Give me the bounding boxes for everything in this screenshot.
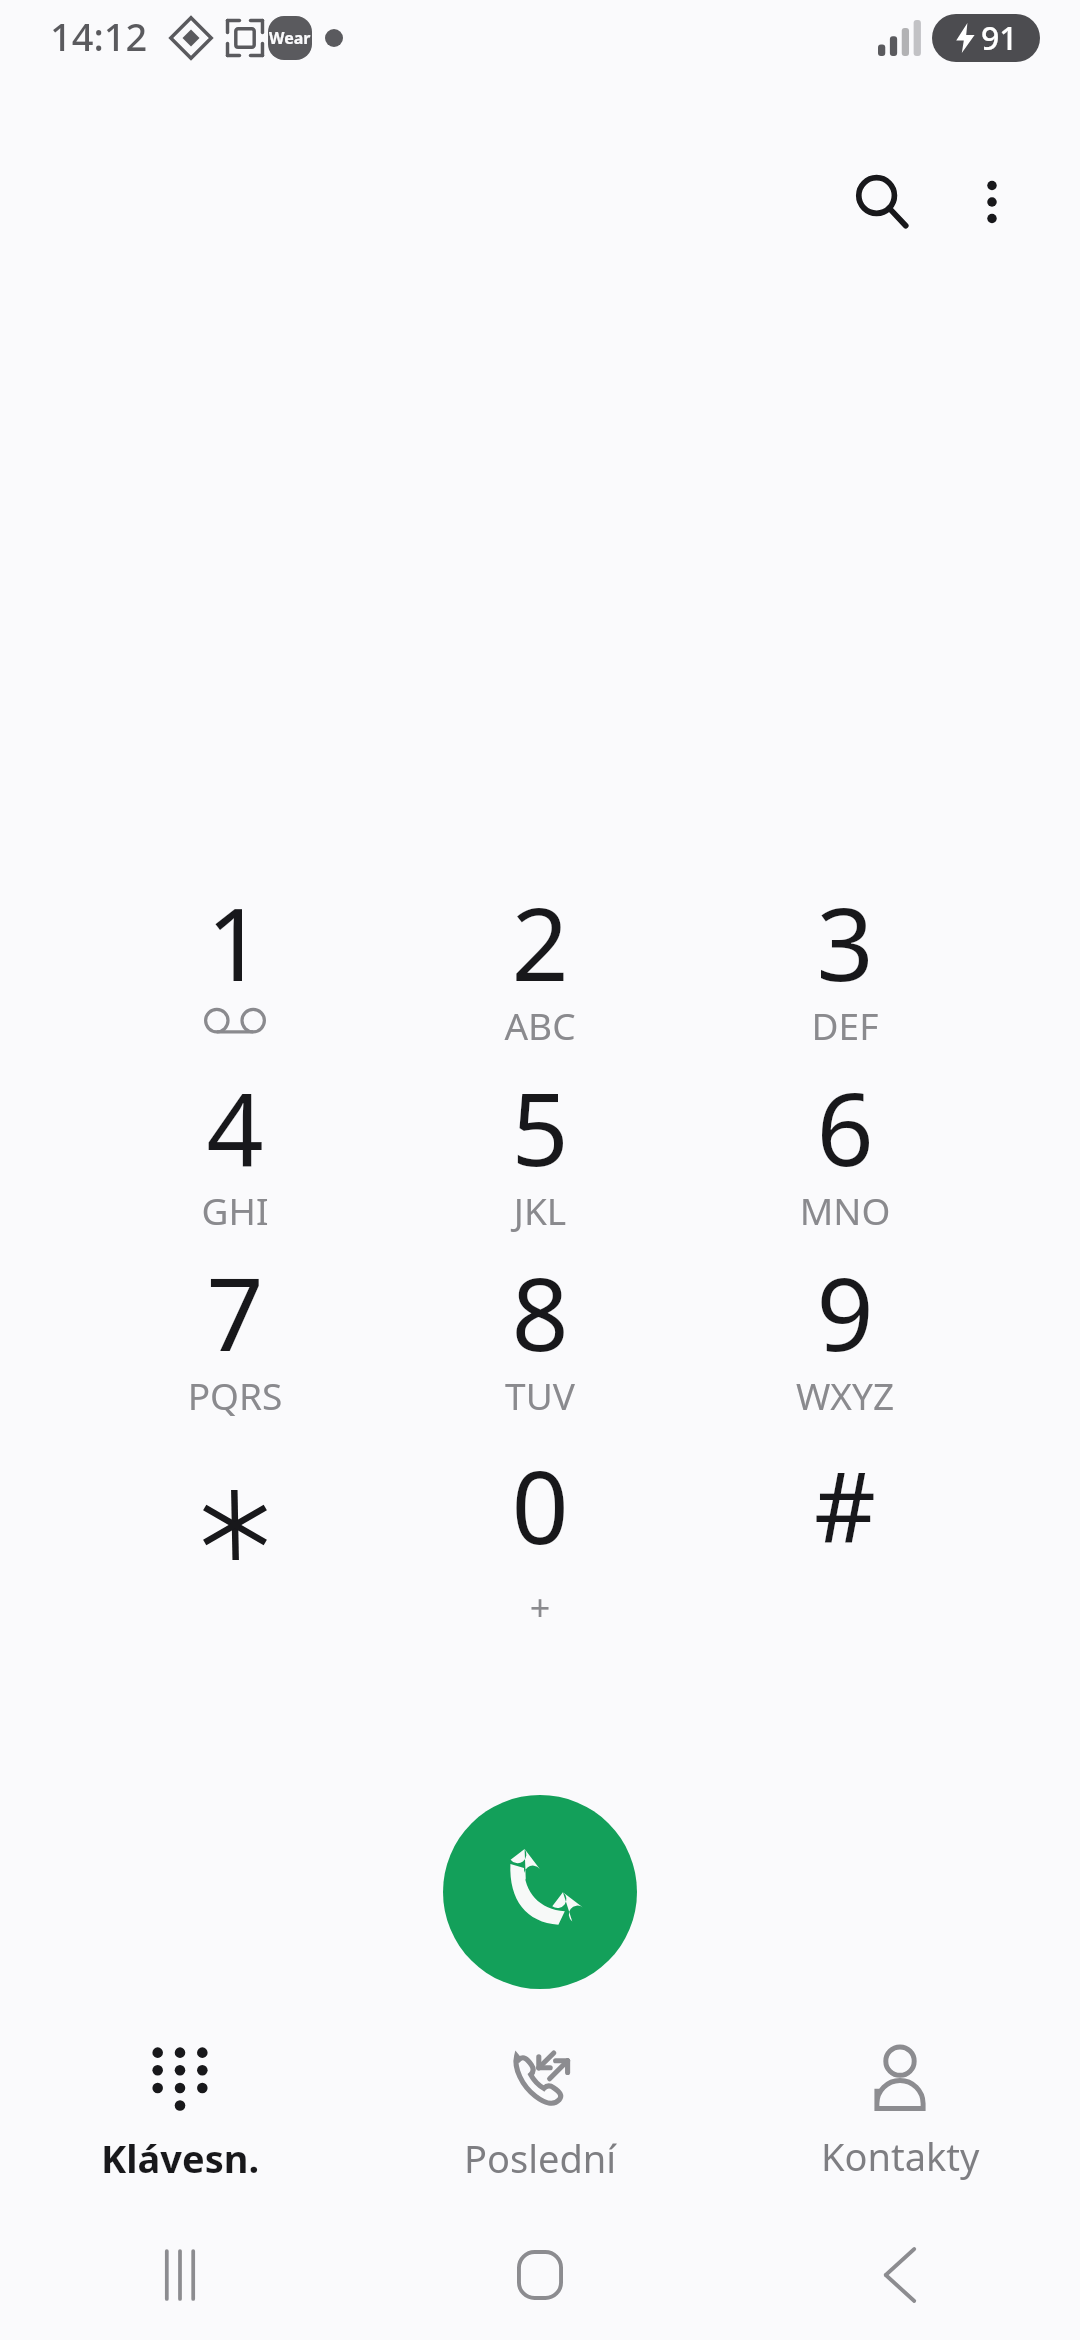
button[interactable]: Kontakty bbox=[720, 2030, 1080, 2230]
staticText: Poslední bbox=[464, 2132, 617, 2184]
staticText: 8 bbox=[511, 1244, 569, 1380]
staticText: PQRS bbox=[95, 1370, 375, 1420]
button[interactable]: 5 bbox=[400, 1083, 680, 1268]
staticText: 3 bbox=[816, 874, 874, 1010]
staticText: 9 bbox=[816, 1244, 874, 1380]
staticText: + bbox=[400, 1583, 680, 1632]
button[interactable]: Home bbox=[360, 2210, 720, 2340]
staticText: WXYZ bbox=[705, 1370, 985, 1420]
button[interactable]: 8 bbox=[400, 1268, 680, 1453]
staticText: ABC bbox=[400, 1000, 680, 1050]
button[interactable]: Call bbox=[443, 1795, 637, 1989]
staticText: GHI bbox=[95, 1185, 375, 1235]
staticText: 6 bbox=[816, 1059, 874, 1195]
staticText: 91 bbox=[981, 16, 1018, 60]
staticText: Wear bbox=[269, 27, 311, 49]
button[interactable]: 3 bbox=[705, 898, 985, 1083]
button[interactable]: 4 bbox=[95, 1083, 375, 1268]
staticText: 5 bbox=[511, 1059, 569, 1195]
staticText: 14:12 bbox=[50, 10, 148, 62]
staticText: 2 bbox=[511, 874, 569, 1010]
button[interactable]: Back bbox=[720, 2210, 1080, 2340]
button[interactable]: 0 bbox=[400, 1461, 680, 1646]
staticText: 4 bbox=[206, 1059, 264, 1195]
button[interactable] bbox=[95, 1461, 375, 1646]
staticText: Kontakty bbox=[821, 2130, 980, 2182]
staticText: Klávesn. bbox=[101, 2132, 260, 2184]
staticText: MNO bbox=[705, 1185, 985, 1235]
staticText: JKL bbox=[400, 1185, 680, 1235]
staticText: TUV bbox=[400, 1370, 680, 1420]
staticText: # bbox=[705, 1439, 985, 1570]
button[interactable]: 2 bbox=[400, 898, 680, 1083]
button[interactable]: 1 bbox=[95, 898, 375, 1083]
staticText: 0 bbox=[511, 1437, 569, 1573]
button[interactable]: Search bbox=[834, 154, 930, 250]
staticText: DEF bbox=[705, 1000, 985, 1050]
staticText: 1 bbox=[206, 874, 264, 1010]
button[interactable]: 6 bbox=[705, 1083, 985, 1268]
staticText: 7 bbox=[206, 1244, 264, 1380]
button[interactable]: # bbox=[705, 1461, 985, 1646]
button[interactable]: Poslední bbox=[360, 2030, 720, 2230]
button[interactable]: More options bbox=[944, 154, 1040, 250]
button[interactable]: 7 bbox=[95, 1268, 375, 1453]
button[interactable]: Klávesn. bbox=[0, 2030, 360, 2230]
button[interactable]: Recents bbox=[0, 2210, 360, 2340]
button[interactable]: 9 bbox=[705, 1268, 985, 1453]
